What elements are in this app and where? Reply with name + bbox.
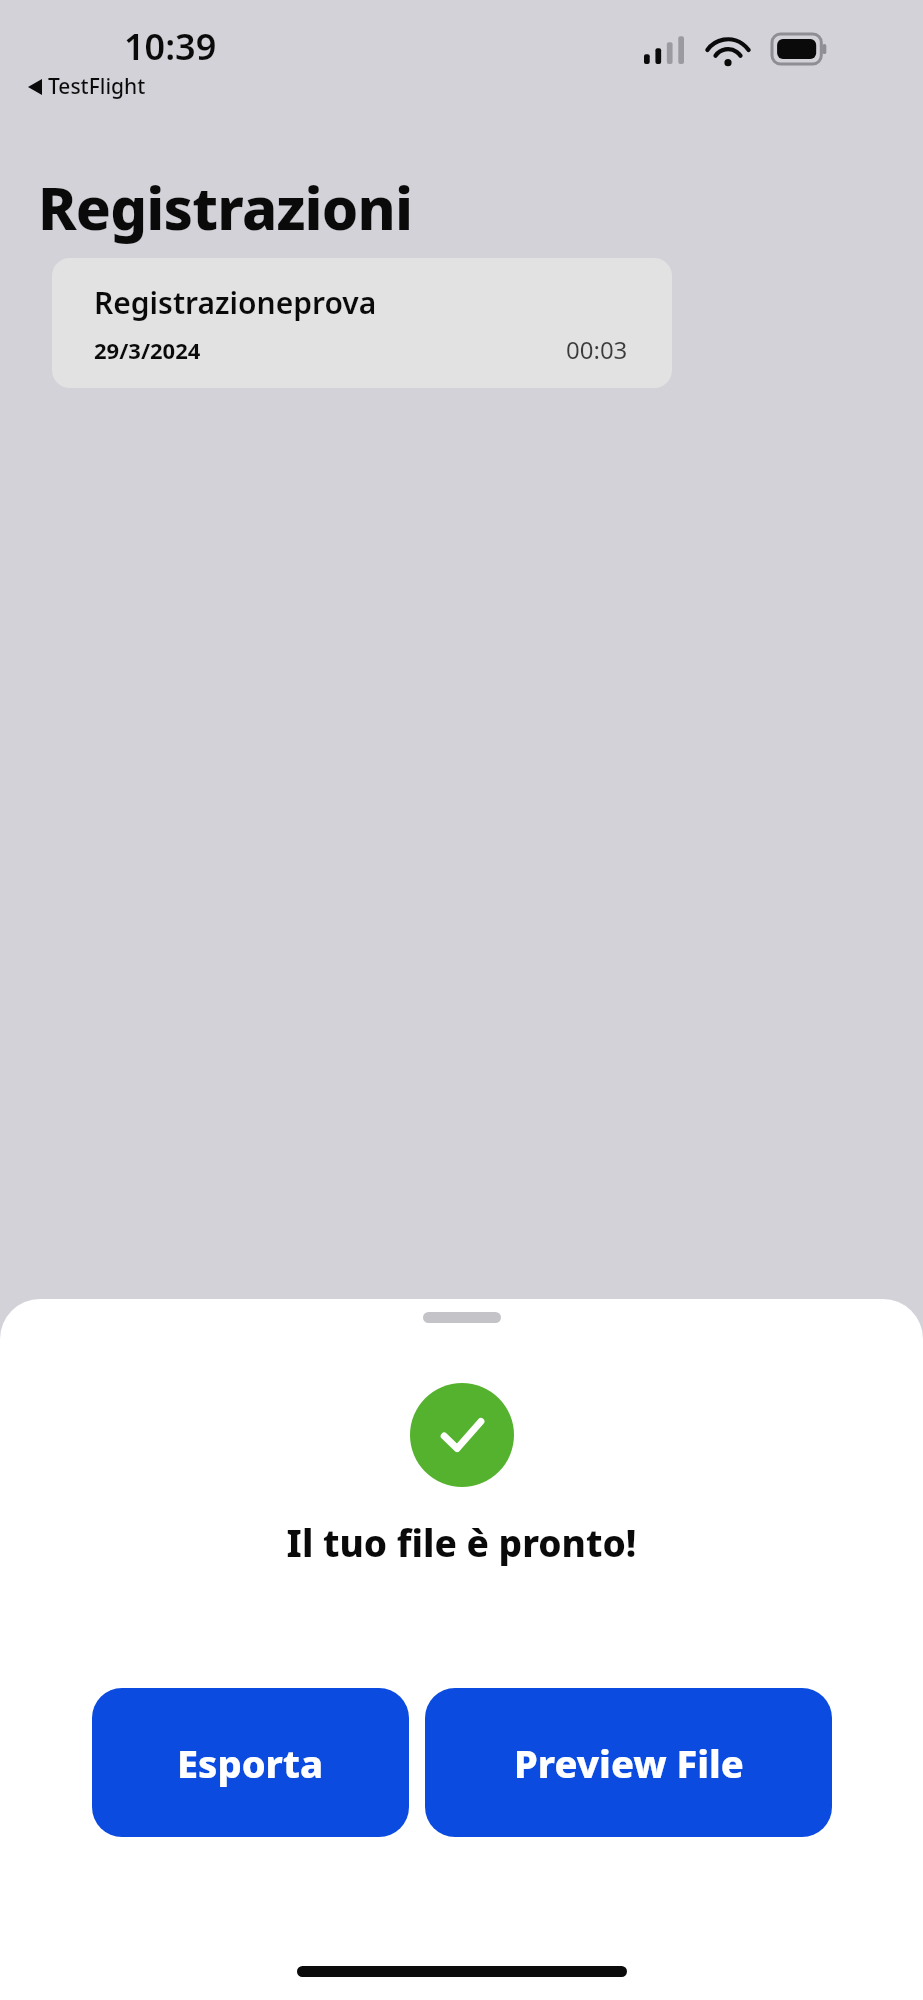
staticText: 29/3/2024 bbox=[94, 335, 201, 365]
staticText: 10:39 bbox=[124, 22, 217, 71]
button[interactable]: Esporta bbox=[92, 1688, 409, 1837]
button[interactable]: Registrazioneprova bbox=[52, 258, 672, 388]
staticText: Esporta bbox=[177, 1737, 324, 1789]
button[interactable]: Preview File bbox=[425, 1688, 832, 1837]
staticText: Registrazioneprova bbox=[94, 282, 377, 323]
staticText: TestFlight bbox=[48, 72, 146, 101]
staticText: 00:03 bbox=[566, 333, 628, 366]
staticText: Registrazioni bbox=[38, 168, 413, 247]
staticText: Il tuo file è pronto! bbox=[0, 1517, 923, 1567]
staticText: Preview File bbox=[514, 1737, 744, 1789]
